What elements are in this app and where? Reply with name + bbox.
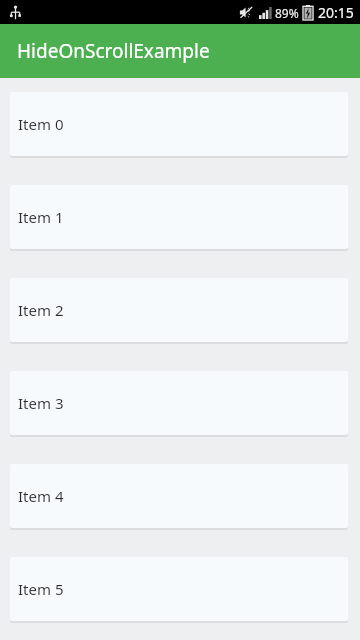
button[interactable]: Item 2: [10, 278, 348, 342]
button[interactable]: Item 0: [10, 92, 348, 156]
staticText: Item 3: [18, 393, 64, 413]
staticText: 20:15: [318, 3, 354, 22]
button[interactable]: Item 5: [10, 557, 348, 621]
button[interactable]: Item 4: [10, 464, 348, 528]
button[interactable]: Item 1: [10, 185, 348, 249]
staticText: HideOnScrollExample: [17, 38, 210, 64]
staticText: Item 4: [18, 486, 64, 506]
staticText: 89%: [275, 5, 299, 21]
staticText: Item 1: [18, 207, 64, 227]
staticText: Item 5: [18, 579, 64, 599]
staticText: Item 0: [18, 114, 64, 134]
button[interactable]: Item 3: [10, 371, 348, 435]
staticText: Item 2: [18, 300, 64, 320]
